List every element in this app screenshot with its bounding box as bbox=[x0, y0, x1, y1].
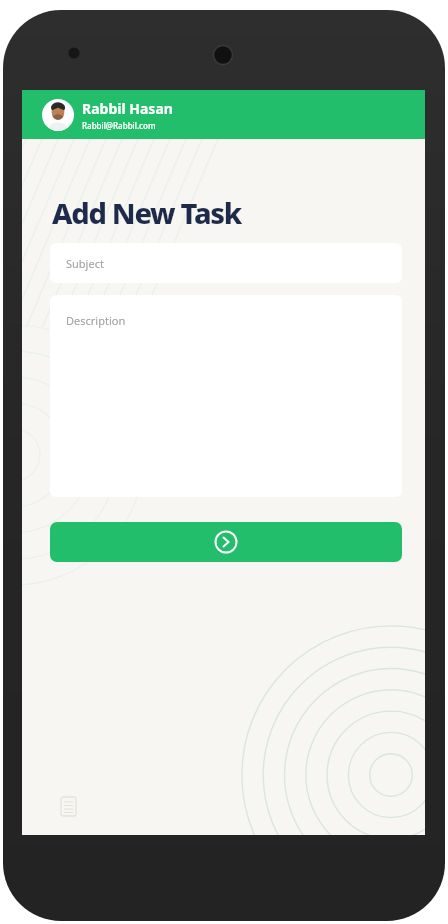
staticText: Rabbil@Rabbil.com bbox=[82, 120, 156, 131]
button[interactable]: Subject bbox=[50, 243, 402, 283]
button[interactable]: Rabbil Hasan bbox=[22, 90, 425, 139]
button[interactable] bbox=[50, 522, 402, 562]
staticText: Subject bbox=[66, 256, 104, 271]
staticText: Add New Task bbox=[52, 193, 241, 232]
button[interactable]: Description bbox=[50, 295, 402, 497]
staticText: Description bbox=[66, 313, 126, 328]
staticText: Rabbil Hasan bbox=[82, 99, 173, 118]
